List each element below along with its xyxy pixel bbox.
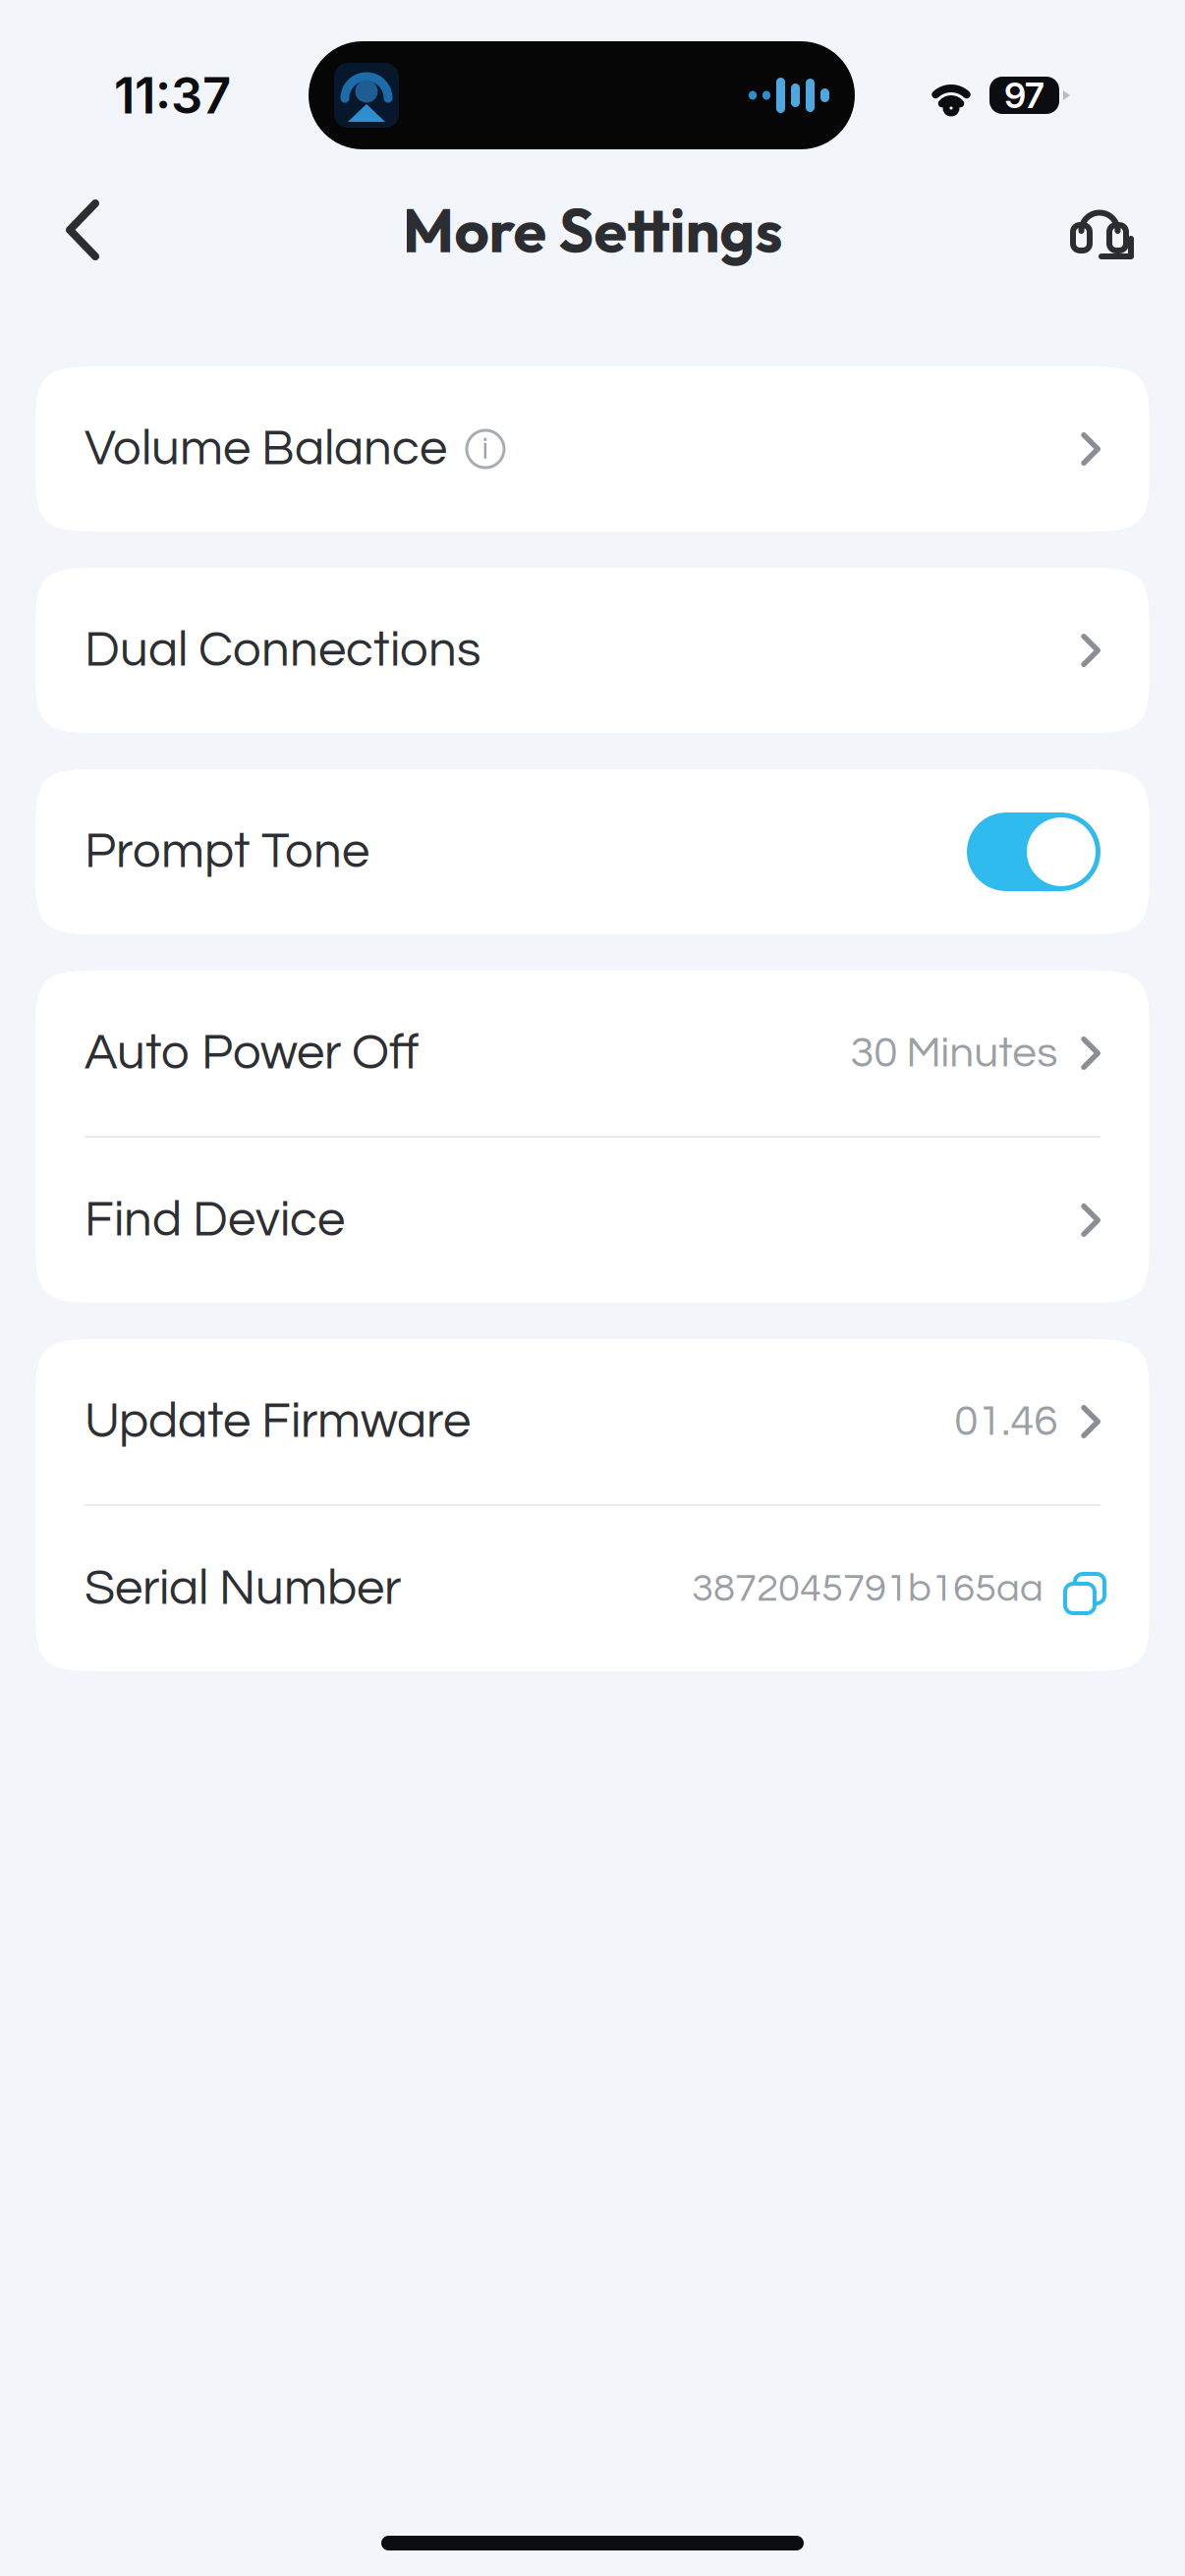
button[interactable]: Find Device xyxy=(35,1138,1150,1303)
staticText: Volume Balance xyxy=(85,423,447,475)
staticText: Update Firmware xyxy=(85,1396,471,1447)
staticText: 01.46 xyxy=(954,1399,1058,1444)
button[interactable]: Back xyxy=(35,183,130,277)
button[interactable]: Serial Number xyxy=(35,1506,1150,1671)
staticText: 97 xyxy=(1004,74,1044,117)
button[interactable]: Auto Power Off xyxy=(35,971,1150,1136)
button[interactable]: Update Firmware xyxy=(35,1339,1150,1504)
staticText: Prompt Tone xyxy=(85,826,369,877)
staticText: 3872045791b165aa xyxy=(692,1568,1044,1609)
staticText: Auto Power Off xyxy=(85,1028,420,1079)
button[interactable]: Volume Balance xyxy=(35,366,1150,532)
staticText: Dual Connections xyxy=(85,625,480,676)
staticText: Find Device xyxy=(85,1195,345,1246)
staticText: More Settings xyxy=(402,192,783,268)
staticText: Serial Number xyxy=(85,1563,401,1614)
staticText: i xyxy=(482,433,489,465)
button[interactable]: Prompt Tone xyxy=(967,812,1100,891)
button[interactable]: Headphones xyxy=(1055,183,1150,277)
staticText: 30 Minutes xyxy=(850,1031,1058,1075)
button[interactable]: Dual Connections xyxy=(35,568,1150,733)
staticText: 11:37 xyxy=(114,65,231,125)
